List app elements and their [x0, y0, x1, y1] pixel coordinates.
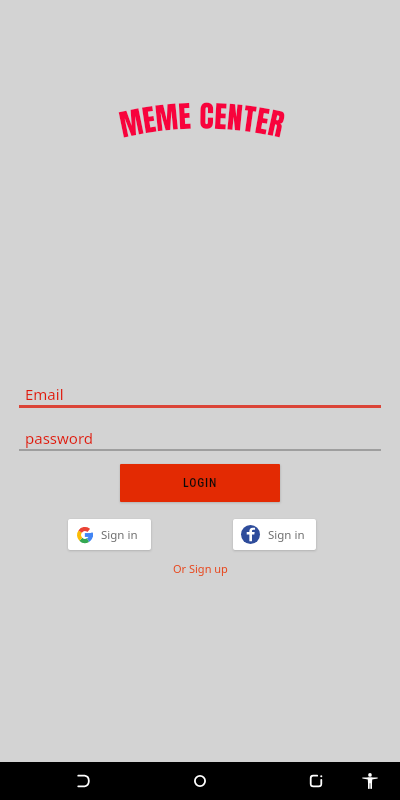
staticText: Sign in: [268, 527, 305, 543]
button[interactable]: Home: [142, 762, 258, 800]
staticText: password: [25, 428, 93, 448]
staticText: Email: [25, 384, 64, 404]
button[interactable]: password: [19, 423, 381, 451]
staticText: LOGIN: [183, 476, 218, 490]
button[interactable]: Accessibility: [348, 762, 392, 800]
staticText: Or Sign up: [173, 561, 228, 576]
staticText: Sign in: [101, 527, 138, 543]
button[interactable]: Back: [26, 762, 142, 800]
button[interactable]: LOGIN: [120, 464, 280, 502]
button[interactable]: Sign in: [233, 519, 316, 550]
button[interactable]: Or Sign up: [173, 561, 228, 576]
button[interactable]: Email: [19, 378, 381, 408]
button[interactable]: Recent apps: [258, 762, 374, 800]
button[interactable]: Sign in: [68, 519, 151, 550]
